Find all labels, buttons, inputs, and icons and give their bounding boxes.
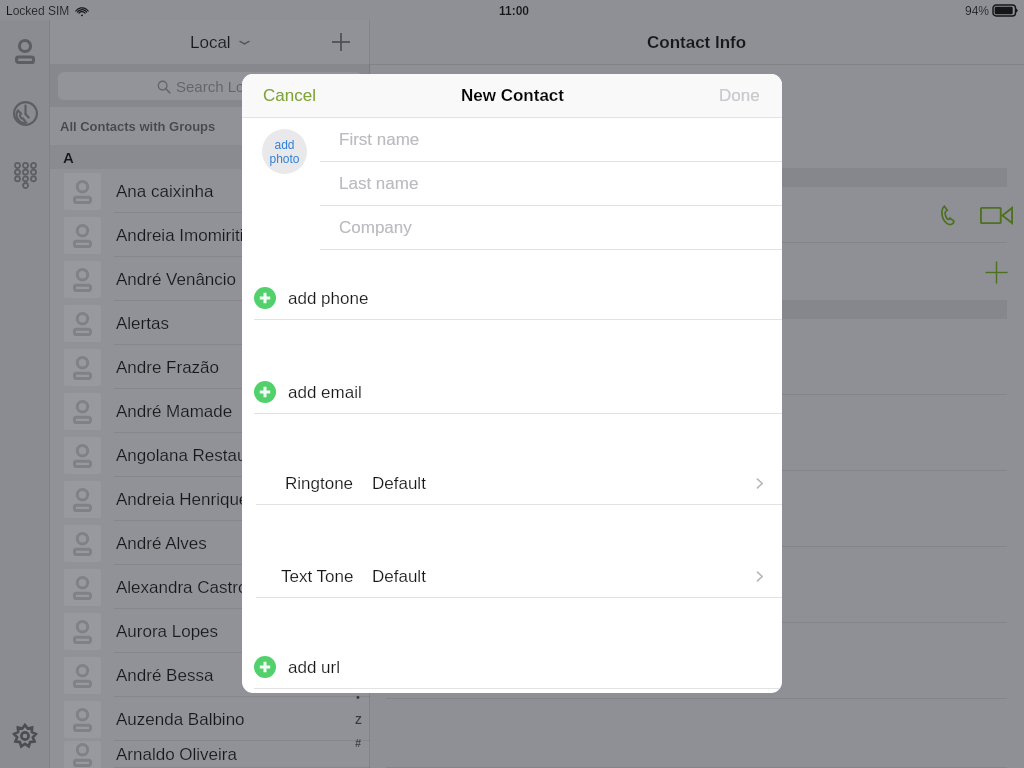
button[interactable]: Search Local	[58, 72, 362, 100]
button[interactable]: add email	[242, 371, 782, 414]
staticText: André Venâncio	[116, 270, 237, 289]
button[interactable]: Keypad	[5, 155, 45, 195]
staticText: Angolana Restaurante	[116, 446, 286, 465]
staticText: Alertas	[116, 314, 169, 333]
staticText: add photo	[269, 138, 300, 166]
button[interactable]: Angolana Restaurante	[50, 433, 370, 477]
staticText: André Alves	[116, 534, 207, 553]
button[interactable]: Recents	[5, 93, 45, 133]
staticText: Z	[355, 714, 362, 726]
staticText: Done	[719, 86, 760, 105]
staticText: Andreia Henriques	[116, 490, 257, 509]
staticText: •	[356, 691, 360, 703]
button[interactable]: Local	[190, 33, 251, 52]
button[interactable]: Auzenda Balbino	[50, 697, 370, 741]
button[interactable]: Arnaldo Oliveira	[50, 741, 370, 768]
staticText: 94%	[965, 4, 990, 17]
staticText: Ana caixinha	[116, 182, 214, 201]
staticText: A	[63, 149, 74, 166]
button[interactable]: Andreia Henriques	[50, 477, 370, 521]
staticText: New Contact	[461, 86, 564, 105]
button[interactable]: Call	[930, 198, 964, 232]
button[interactable]: André Alves	[50, 521, 370, 565]
button[interactable]: Andre Frazão	[50, 345, 370, 389]
staticText: add email	[288, 383, 362, 402]
staticText: add phone	[288, 289, 369, 308]
staticText: Arnaldo Oliveira	[116, 745, 237, 764]
button[interactable]: add photo	[262, 129, 307, 174]
button[interactable]: Text Tone	[242, 555, 782, 598]
button[interactable]: André Mamade	[50, 389, 370, 433]
button[interactable]: Alertas	[50, 301, 370, 345]
staticText: All Contacts with Groups	[60, 119, 216, 134]
staticText: Auzenda Balbino	[116, 710, 245, 729]
staticText: Local	[190, 33, 231, 52]
staticText: Ringtone	[285, 474, 354, 493]
staticText: Alexandra Castro	[116, 578, 248, 597]
staticText: Aurora Lopes	[116, 622, 219, 641]
staticText: André Mamade	[116, 402, 233, 421]
button[interactable]: Add field	[979, 255, 1013, 289]
staticText: Company	[339, 218, 412, 237]
button[interactable]: Settings	[5, 716, 45, 756]
button[interactable]: André Bessa	[50, 653, 370, 697]
button[interactable]: Ringtone	[242, 462, 782, 505]
staticText: #	[355, 737, 362, 749]
staticText: Text Tone	[281, 567, 354, 586]
button[interactable]: Andreia Imomiriti	[50, 213, 370, 257]
button[interactable]: Video call	[979, 198, 1013, 232]
staticText: Default	[372, 474, 426, 493]
staticText: 11:00	[499, 4, 530, 17]
button[interactable]: First name	[320, 118, 782, 162]
button[interactable]: Aurora Lopes	[50, 609, 370, 653]
button[interactable]: Add contact	[324, 25, 358, 59]
staticText: add url	[288, 658, 340, 677]
staticText: Cancel	[263, 86, 316, 105]
staticText: Default	[372, 567, 426, 586]
button[interactable]: Last name	[320, 162, 782, 206]
button[interactable]: add url	[242, 646, 782, 689]
staticText: Andre Frazão	[116, 358, 219, 377]
staticText: Andreia Imomiriti	[116, 226, 244, 245]
staticText: Last name	[339, 174, 419, 193]
button[interactable]: add phone	[242, 277, 782, 320]
button[interactable]: Done	[719, 74, 760, 117]
staticText: André Bessa	[116, 666, 214, 685]
staticText: Search Local	[176, 78, 264, 95]
staticText: First name	[339, 130, 420, 149]
button[interactable]: Cancel	[263, 74, 316, 117]
staticText: Contact Info	[647, 33, 747, 52]
button[interactable]: Contacts	[5, 31, 45, 71]
button[interactable]: Alexandra Castro	[50, 565, 370, 609]
button[interactable]: Ana caixinha	[50, 169, 370, 213]
button[interactable]: Company	[320, 206, 782, 250]
button[interactable]: André Venâncio	[50, 257, 370, 301]
staticText: Locked SIM	[6, 4, 70, 17]
